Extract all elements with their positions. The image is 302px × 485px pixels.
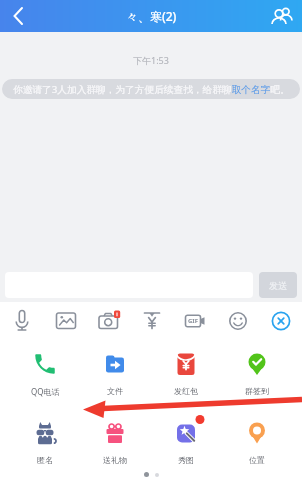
staticText: QQ电话 xyxy=(31,386,60,397)
staticText: 文件 xyxy=(107,386,123,396)
button[interactable]: 文件 xyxy=(80,351,150,396)
staticText: 群签到 xyxy=(245,386,269,396)
button[interactable] xyxy=(262,0,302,32)
button[interactable]: GIF xyxy=(173,302,216,340)
staticText: 发红包 xyxy=(174,386,198,396)
staticText: 位置 xyxy=(249,455,265,465)
staticText: 发送 xyxy=(269,280,287,291)
button[interactable] xyxy=(216,302,259,340)
button[interactable] xyxy=(0,302,44,340)
staticText: 送礼物 xyxy=(103,455,127,465)
button[interactable]: 发红包 xyxy=(150,351,221,396)
button[interactable]: 发送 xyxy=(259,272,297,298)
staticText: 匿名 xyxy=(37,455,53,465)
button[interactable]: 秀图 xyxy=(150,420,221,465)
button[interactable] xyxy=(0,0,36,32)
button[interactable]: 位置 xyxy=(221,420,292,465)
button[interactable] xyxy=(130,302,173,340)
button[interactable]: 群签到 xyxy=(221,351,292,396)
staticText: 你邀请了3人加入群聊，为了方便后续查找，给群聊取个名字吧。 xyxy=(13,83,290,96)
button[interactable] xyxy=(87,302,130,340)
staticText: 秀图 xyxy=(178,455,194,465)
button[interactable]: 送礼物 xyxy=(80,420,150,465)
button[interactable]: QQ电话 xyxy=(10,351,80,397)
staticText: 下午1:53 xyxy=(133,54,169,66)
staticText: 々、寒(2) xyxy=(126,8,177,24)
button[interactable]: 匿名 xyxy=(10,420,80,465)
button[interactable] xyxy=(44,302,87,340)
button[interactable]: 你邀请了3人加入群聊，为了方便后续查找，给群聊取个名字吧。 xyxy=(2,79,300,99)
button[interactable] xyxy=(259,302,302,340)
staticText: GIF xyxy=(188,317,198,325)
